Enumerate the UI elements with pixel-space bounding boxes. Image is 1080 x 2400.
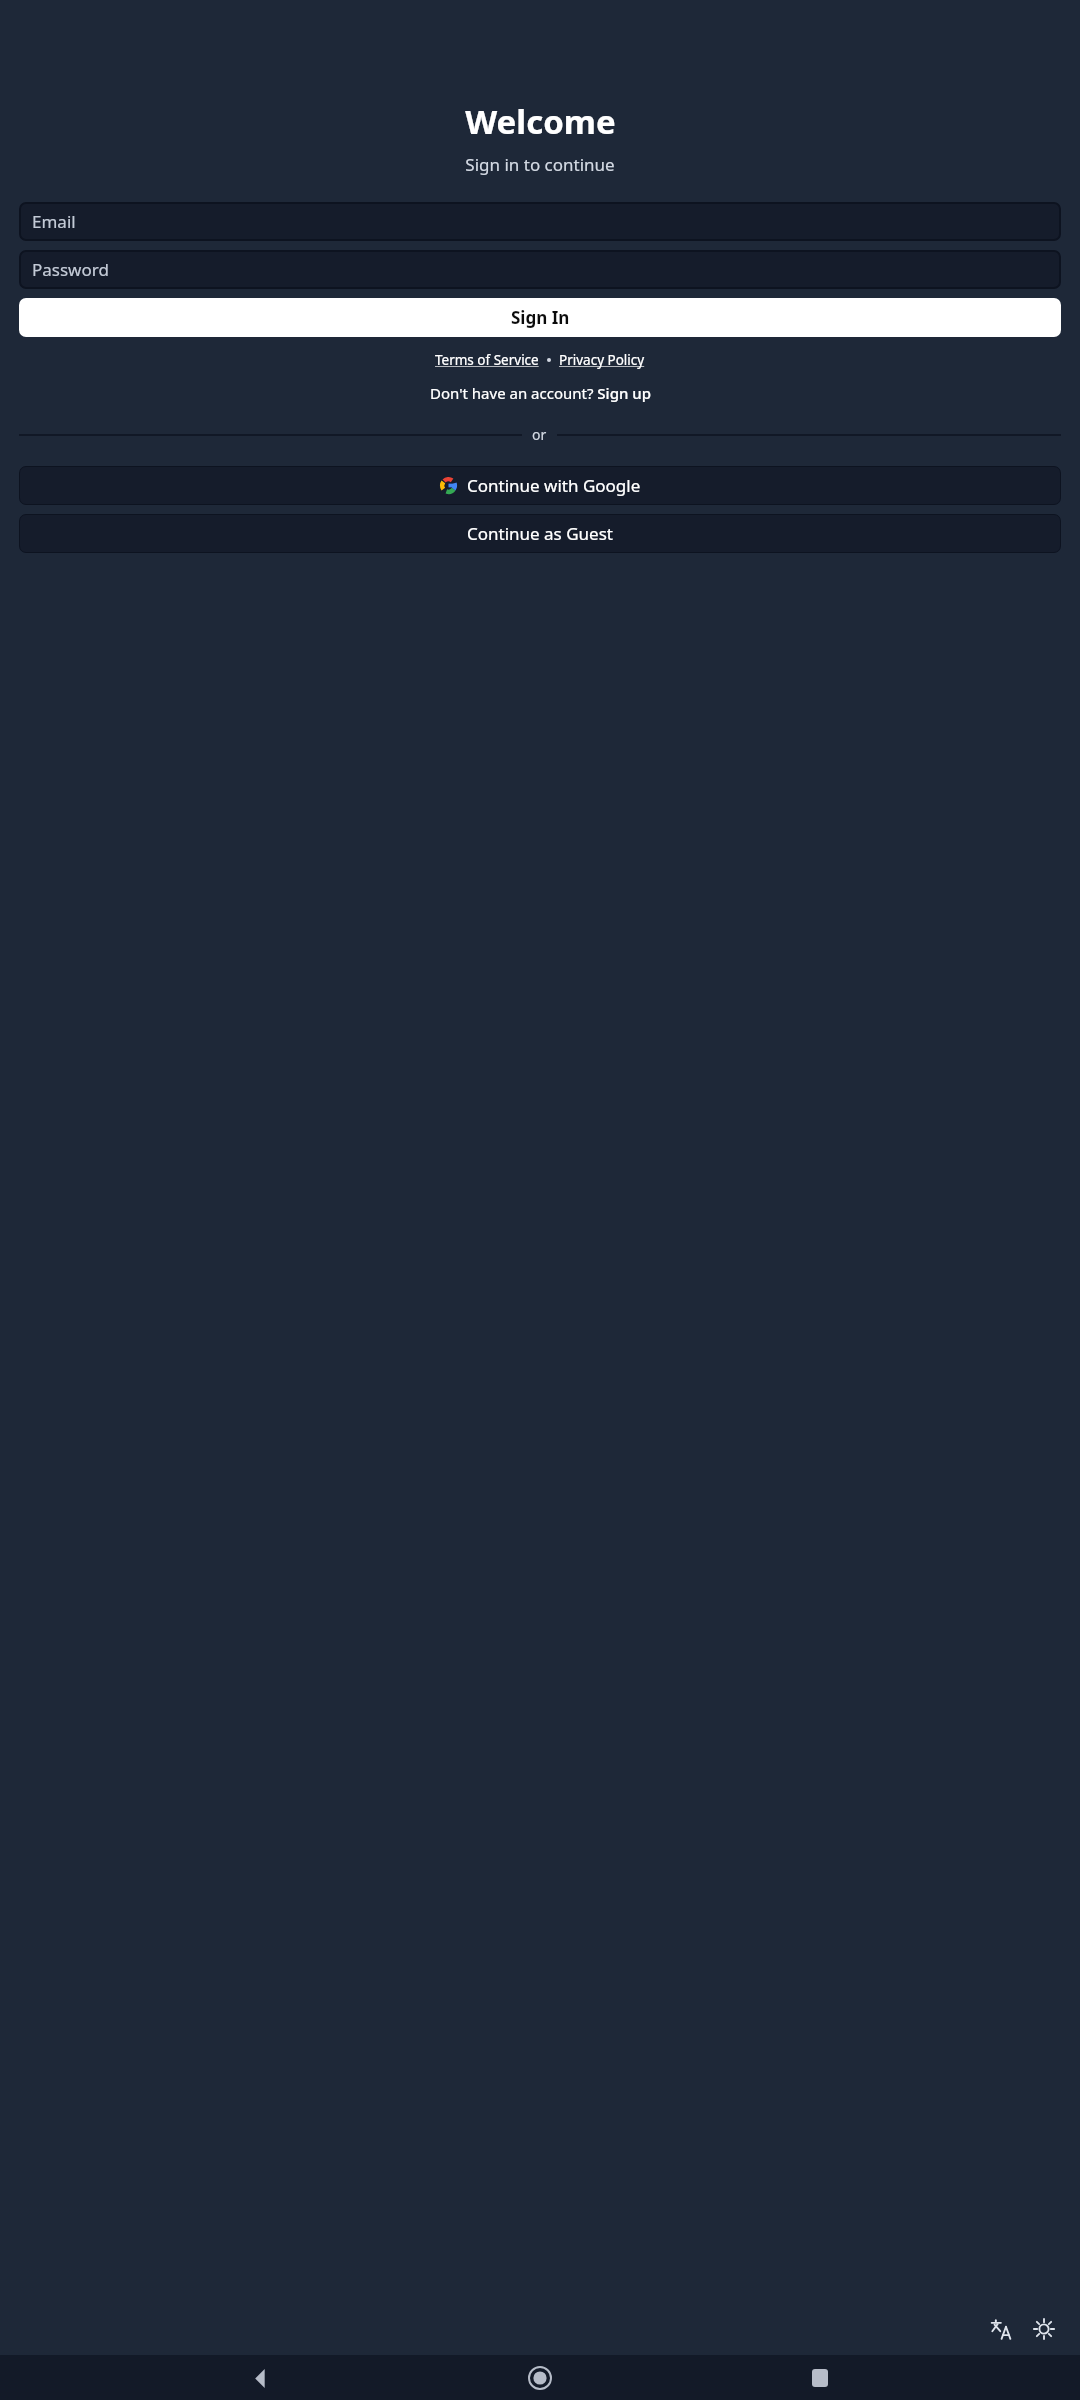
button[interactable]: Change language [985, 2312, 1019, 2346]
staticText: Don't have an account? Sign up [430, 383, 651, 403]
button[interactable]: Home [520, 2358, 560, 2398]
button[interactable]: Sign In [19, 298, 1061, 337]
button[interactable]: Continue as Guest [19, 514, 1061, 553]
staticText: Sign In [511, 306, 570, 329]
button[interactable]: Don't have an account? Sign up [430, 383, 651, 403]
button[interactable]: Privacy Policy [559, 351, 645, 369]
staticText: Continue with Google [467, 474, 641, 497]
button[interactable]: Email [19, 202, 1061, 241]
staticText: Continue as Guest [467, 522, 613, 545]
staticText: Password [32, 258, 109, 281]
staticText: Privacy Policy [559, 351, 645, 369]
button[interactable]: Toggle brightness [1027, 2312, 1061, 2346]
staticText: Welcome [465, 99, 616, 144]
staticText: Sign in to continue [465, 153, 615, 176]
button[interactable]: Back [240, 2358, 280, 2398]
button[interactable]: Recent apps [800, 2358, 840, 2398]
button[interactable]: Continue with Google [19, 466, 1061, 505]
staticText: or [532, 425, 547, 444]
button[interactable]: Password [19, 250, 1061, 289]
staticText: Email [32, 210, 76, 233]
button[interactable]: Terms of Service [435, 351, 539, 369]
staticText: Terms of Service [435, 351, 539, 369]
